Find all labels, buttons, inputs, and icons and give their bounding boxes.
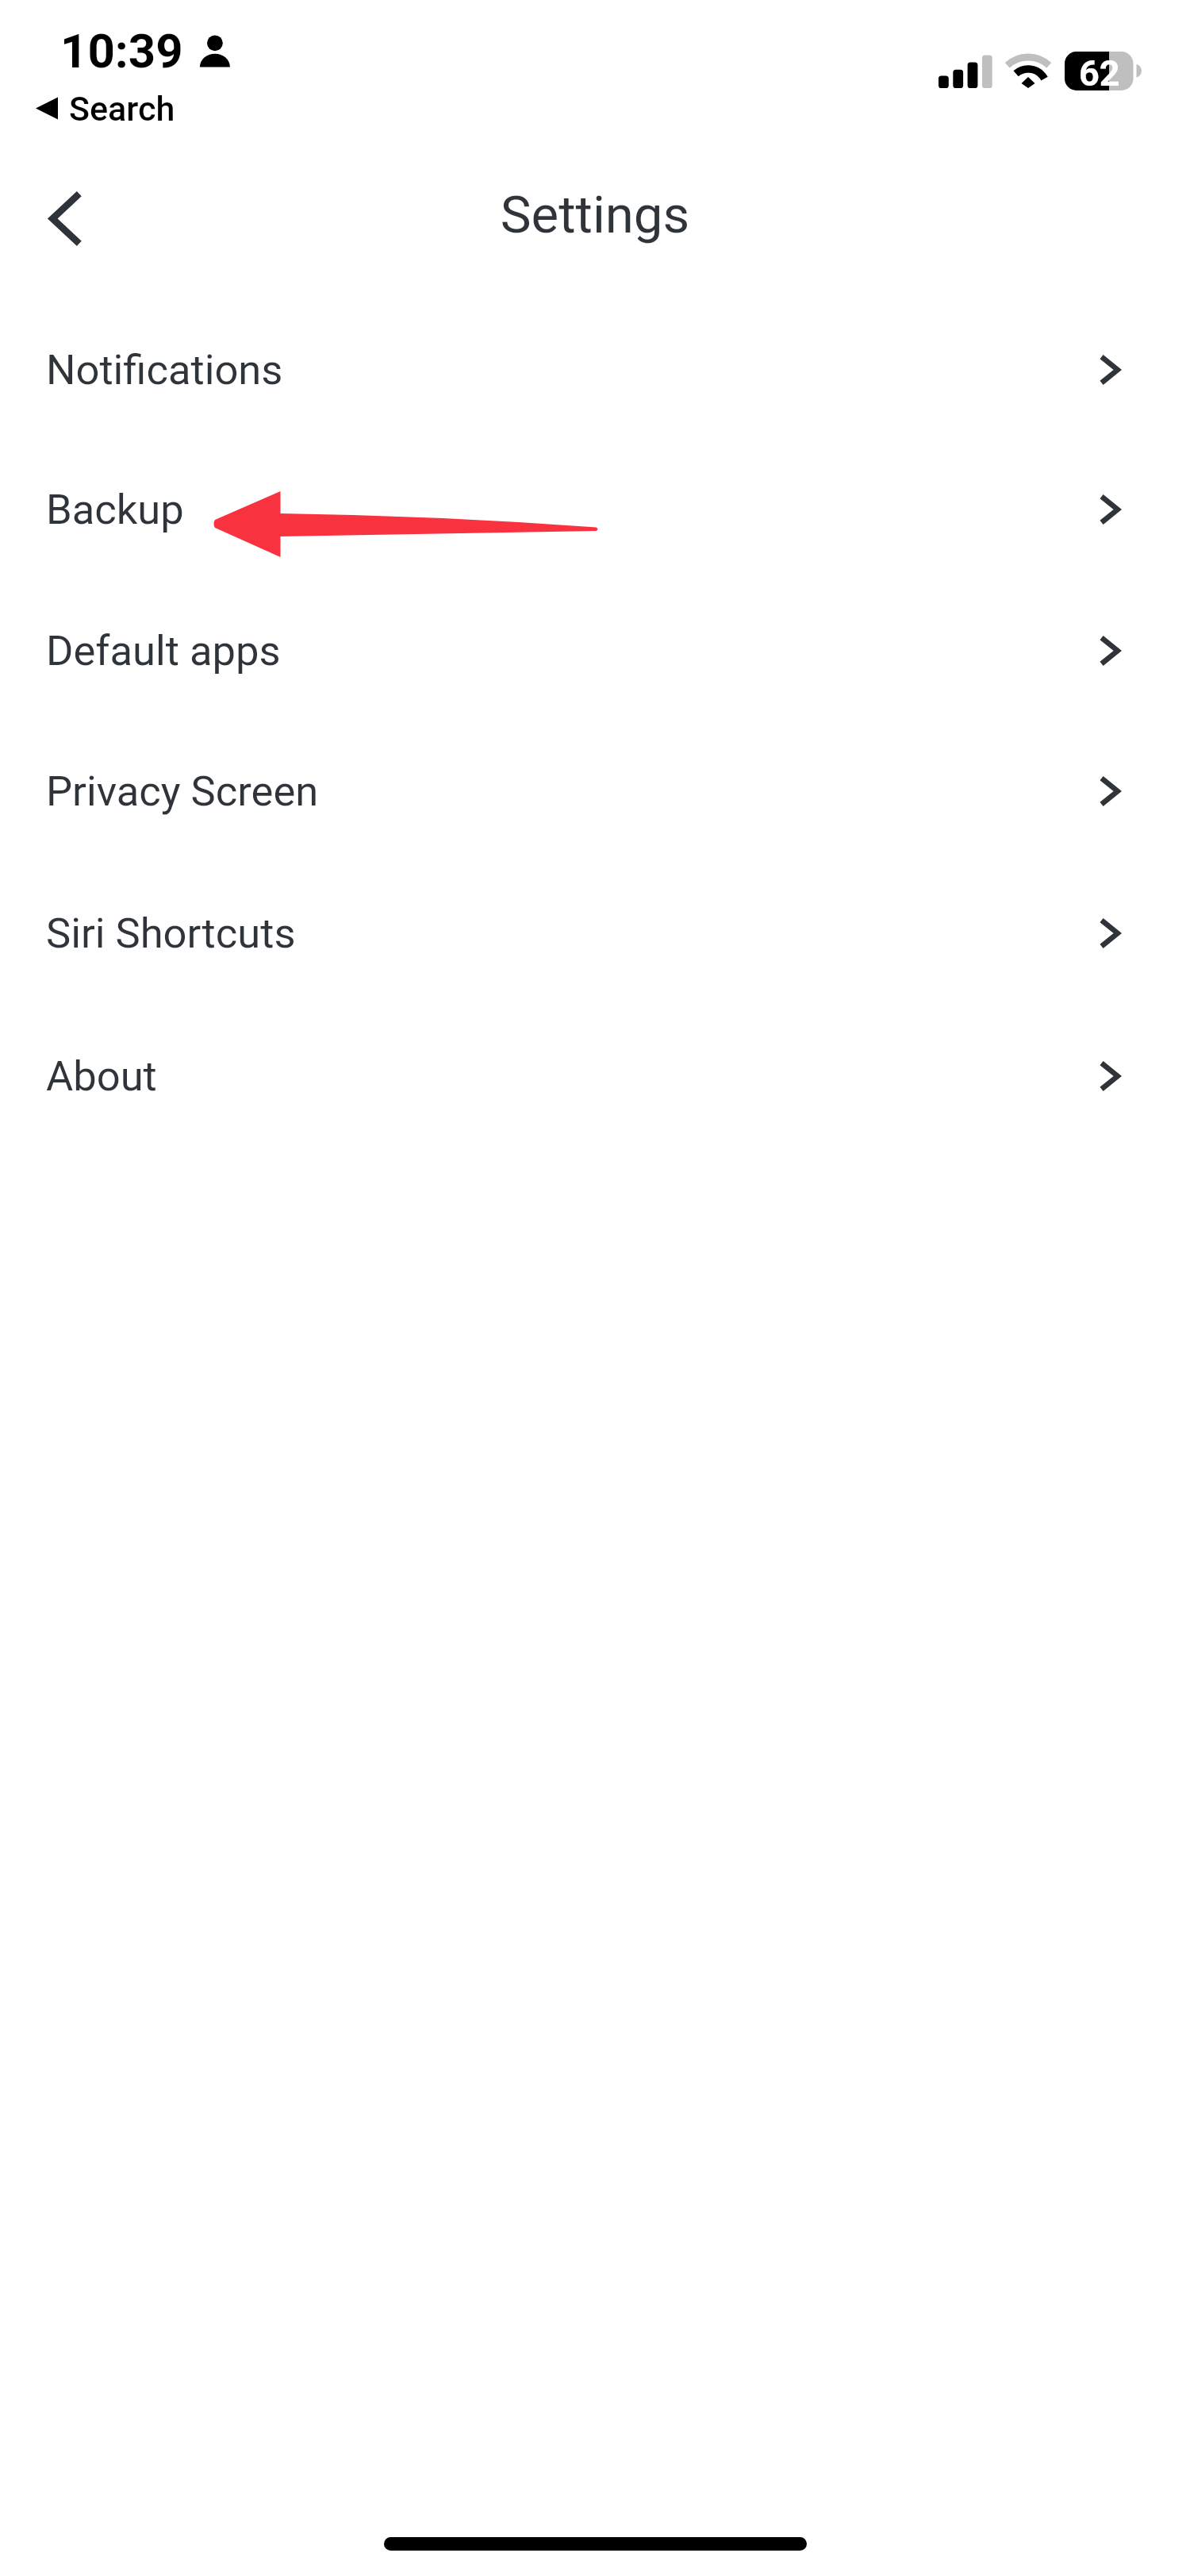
- other: Battery 62 percent: [1065, 52, 1143, 94]
- staticText: Notifications: [46, 345, 283, 394]
- staticText: Default apps: [46, 626, 281, 675]
- button[interactable]: Back: [18, 171, 113, 266]
- button[interactable]: Search: [32, 86, 182, 127]
- other: Cellular signal: [939, 54, 992, 88]
- button[interactable]: Default apps: [0, 580, 1190, 721]
- button[interactable]: Siri Shortcuts: [0, 863, 1190, 1004]
- staticText: 10:39: [60, 23, 183, 79]
- staticText: Backup: [46, 485, 184, 534]
- other: Wi-Fi: [1001, 48, 1058, 92]
- button[interactable]: Privacy Screen: [0, 721, 1190, 862]
- staticText: 62: [1079, 52, 1120, 94]
- staticText: Search: [69, 89, 175, 129]
- other: Account: [198, 34, 232, 69]
- button[interactable]: Notifications: [0, 299, 1190, 440]
- button[interactable]: Backup: [0, 439, 1190, 580]
- staticText: About: [46, 1052, 157, 1101]
- staticText: Privacy Screen: [46, 767, 319, 816]
- staticText: Settings: [0, 184, 1190, 245]
- staticText: Siri Shortcuts: [46, 909, 296, 958]
- button[interactable]: About: [0, 1005, 1190, 1147]
